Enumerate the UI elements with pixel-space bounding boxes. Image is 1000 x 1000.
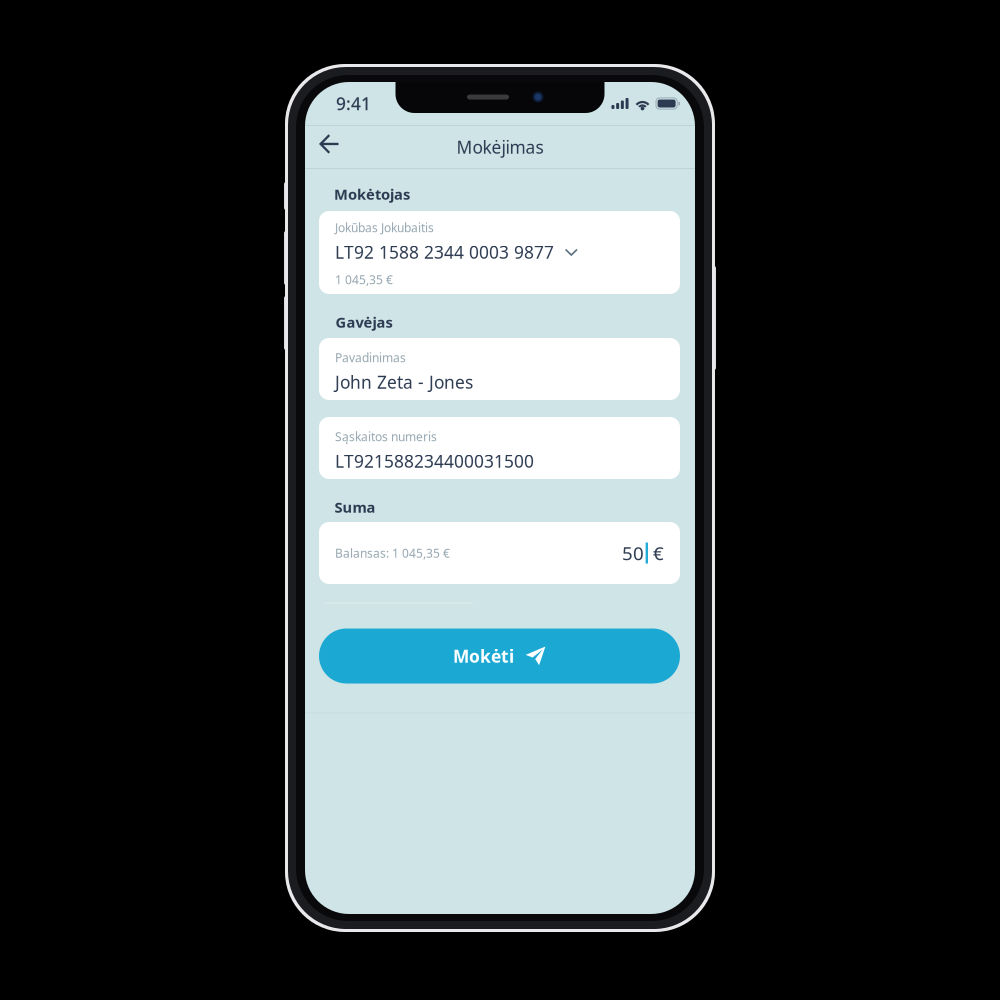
- staticText: LT92 1588 2344 0003 9877: [335, 240, 554, 263]
- staticText: €: [653, 541, 664, 565]
- staticText: Pavadinimas: [335, 349, 406, 365]
- staticText: Jokūbas Jokubaitis: [335, 220, 434, 235]
- staticText: Sąskaitos numeris: [335, 428, 437, 444]
- staticText: Mokėjimas: [456, 135, 543, 158]
- staticText: Suma: [334, 497, 375, 517]
- staticText: Gavėjas: [335, 312, 392, 332]
- staticText: Balansas: 1 045,35 €: [335, 545, 450, 561]
- staticText: 50: [622, 541, 644, 565]
- staticText: LT921588234400031500: [335, 449, 534, 472]
- button[interactable]: Back: [307, 125, 351, 169]
- staticText: Mokėti: [453, 644, 514, 667]
- staticText: 1 045,35 €: [335, 271, 393, 287]
- staticText: Mokėtojas: [334, 184, 410, 204]
- button[interactable]: Mokėti: [305, 82, 695, 914]
- staticText: John Zeta - Jones: [335, 370, 473, 393]
- staticText: 9:41: [336, 92, 371, 115]
- button[interactable]: Jokūbas Jokubaitis: [305, 82, 695, 914]
